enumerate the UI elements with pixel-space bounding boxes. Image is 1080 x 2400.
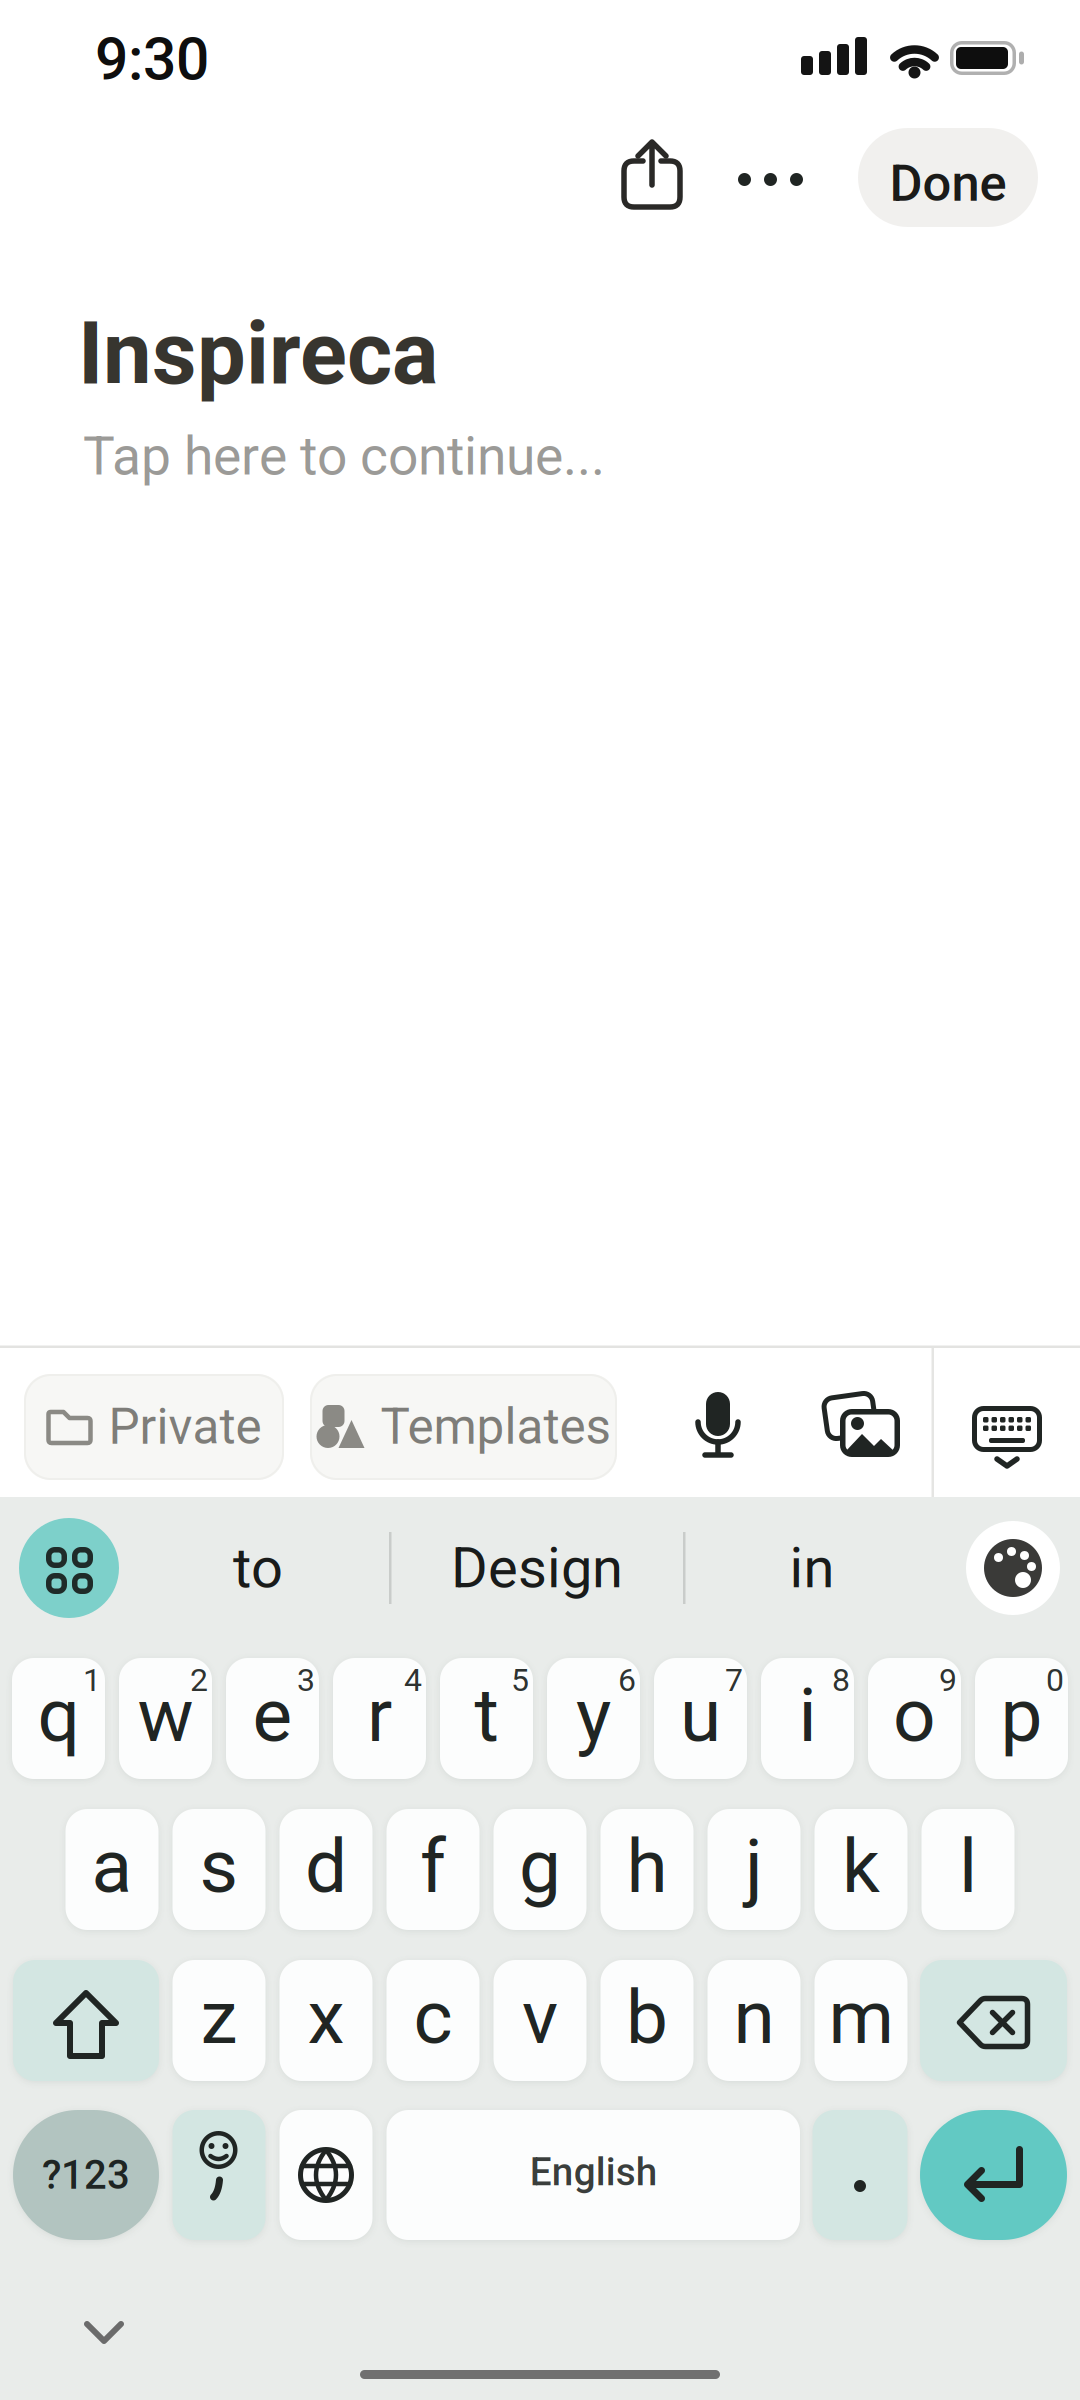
button[interactable]: d <box>279 1809 372 1930</box>
staticText: h <box>626 1823 667 1910</box>
button[interactable]: Keyboard tools <box>19 1518 119 1618</box>
staticText: 8 <box>832 1661 850 1699</box>
button[interactable]: p <box>975 1658 1068 1779</box>
button[interactable]: y <box>547 1658 640 1779</box>
button[interactable]: Keyboard theme <box>966 1521 1060 1615</box>
button[interactable]: v <box>493 1960 586 2081</box>
button[interactable]: Space <box>386 2110 800 2240</box>
staticText: g <box>519 1823 561 1910</box>
button[interactable]: to <box>148 1523 368 1613</box>
staticText: 3 <box>297 1661 315 1699</box>
button[interactable]: Private <box>24 1374 284 1480</box>
staticText: l <box>959 1823 977 1910</box>
staticText: 1 <box>83 1661 101 1699</box>
button[interactable]: n <box>707 1960 800 2081</box>
button[interactable]: Delete <box>920 1960 1067 2081</box>
staticText: c <box>413 1974 452 2061</box>
button[interactable]: More <box>732 141 810 219</box>
staticText: p <box>1000 1672 1042 1759</box>
button[interactable]: Return <box>920 2110 1067 2240</box>
button[interactable]: x <box>279 1960 372 2081</box>
staticText: 7 <box>725 1661 743 1699</box>
staticText: a <box>91 1823 132 1910</box>
staticText: Design <box>451 1535 623 1601</box>
staticText: m <box>828 1974 893 2061</box>
button[interactable]: Design <box>417 1523 657 1613</box>
staticText: Private <box>108 1398 261 1456</box>
staticText: w <box>137 1672 193 1759</box>
staticText: 4 <box>404 1661 422 1699</box>
button[interactable]: m <box>814 1960 907 2081</box>
staticText: 2 <box>190 1661 208 1699</box>
button[interactable]: Period <box>812 2110 907 2240</box>
button[interactable]: Emoji <box>172 2110 1080 2400</box>
button[interactable]: a <box>65 1809 158 1930</box>
button[interactable]: Templates <box>310 1374 617 1480</box>
staticText: Done <box>889 154 1006 213</box>
button[interactable]: w <box>119 1658 212 1779</box>
button[interactable]: u <box>654 1658 747 1779</box>
staticText: Tap here to continue... <box>83 425 605 487</box>
button[interactable]: h <box>600 1809 693 1930</box>
button[interactable]: q <box>12 1658 105 1779</box>
button[interactable]: g <box>493 1809 586 1930</box>
staticText: 5 <box>511 1661 529 1699</box>
staticText: 9:30 <box>95 25 209 94</box>
staticText: to <box>233 1535 283 1601</box>
staticText: English <box>530 2149 657 2195</box>
staticText: t <box>474 1672 498 1759</box>
staticText: y <box>576 1672 611 1759</box>
staticText: x <box>307 1974 344 2061</box>
button[interactable]: k <box>814 1809 907 1930</box>
button[interactable]: o <box>868 1658 961 1779</box>
button[interactable]: Dictate <box>688 1392 1080 2400</box>
button[interactable]: Done <box>858 128 1038 227</box>
button[interactable]: Hide keyboard <box>968 1402 1080 2400</box>
staticText: n <box>733 1974 774 2061</box>
staticText: d <box>305 1823 347 1910</box>
staticText: z <box>200 1974 237 2061</box>
button[interactable]: r <box>333 1658 426 1779</box>
staticText: j <box>745 1823 763 1910</box>
staticText: o <box>893 1672 936 1759</box>
staticText: r <box>367 1672 392 1759</box>
button[interactable]: z <box>172 1960 265 2081</box>
button[interactable]: j <box>707 1809 800 1930</box>
button[interactable]: b <box>600 1960 693 2081</box>
staticText: s <box>199 1823 238 1910</box>
staticText: 9 <box>939 1661 957 1699</box>
staticText: u <box>680 1672 721 1759</box>
staticText: Templates <box>380 1398 610 1456</box>
button[interactable]: Symbols <box>13 2110 159 2240</box>
staticText: Inspireca <box>78 303 438 405</box>
button[interactable]: e <box>226 1658 319 1779</box>
button[interactable]: Tap here to continue... <box>83 425 605 487</box>
button[interactable]: Share <box>612 139 1080 2400</box>
staticText: q <box>37 1672 79 1759</box>
staticText: v <box>522 1974 558 2061</box>
button[interactable]: l <box>921 1809 1014 1930</box>
button[interactable]: s <box>172 1809 265 1930</box>
staticText: i <box>798 1672 816 1759</box>
button[interactable]: in <box>702 1523 922 1613</box>
button[interactable]: Shift <box>13 1960 159 2081</box>
button[interactable]: f <box>386 1809 479 1930</box>
staticText: 0 <box>1046 1661 1064 1699</box>
button[interactable]: i <box>761 1658 854 1779</box>
button[interactable]: Switch keyboard <box>279 2110 372 2240</box>
button[interactable]: Minimize keyboard <box>85 2322 123 2344</box>
button[interactable]: c <box>386 1960 479 2081</box>
staticText: b <box>626 1974 668 2061</box>
staticText: ?123 <box>42 2152 130 2198</box>
staticText: f <box>420 1823 446 1910</box>
button[interactable]: Photos <box>822 1391 1080 2400</box>
staticText: 6 <box>618 1661 636 1699</box>
staticText: e <box>252 1672 292 1759</box>
button[interactable]: t <box>440 1658 533 1779</box>
staticText: k <box>842 1823 880 1910</box>
staticText: in <box>789 1535 834 1601</box>
